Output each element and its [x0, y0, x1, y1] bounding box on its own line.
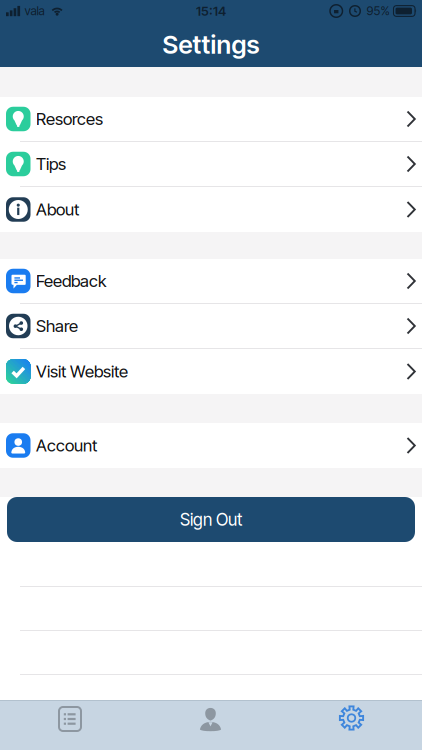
button[interactable]: Resorces — [0, 97, 422, 141]
staticText: Visit Website — [36, 361, 128, 382]
staticText: Account — [36, 435, 97, 456]
button[interactable]: Tips — [0, 142, 422, 186]
staticText: 15:14 — [196, 3, 226, 19]
staticText: 95% — [366, 4, 389, 18]
staticText: Settings — [162, 29, 259, 60]
staticText: Feedback — [36, 271, 106, 291]
button[interactable]: Share — [0, 304, 422, 348]
button[interactable]: Sign Out — [7, 497, 415, 542]
button[interactable]: Visit Website — [0, 349, 422, 394]
staticText: Resorces — [36, 109, 103, 129]
button[interactable]: About — [0, 187, 422, 232]
button[interactable]: Profile — [140, 701, 281, 750]
button[interactable]: Forms — [0, 701, 140, 750]
staticText: Tips — [36, 154, 66, 174]
staticText: Sign Out — [180, 509, 242, 530]
button[interactable]: Settings — [281, 701, 422, 750]
staticText: Share — [36, 316, 78, 336]
staticText: About — [36, 199, 79, 220]
staticText: vala — [24, 4, 44, 18]
button[interactable]: Feedback — [0, 259, 422, 303]
button[interactable]: Account — [0, 423, 422, 468]
